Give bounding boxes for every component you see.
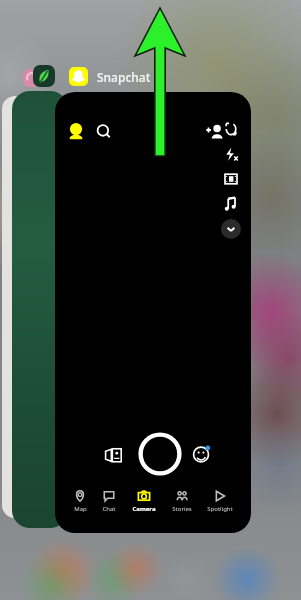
button[interactable]: Profile xyxy=(64,120,88,144)
staticText: Camera xyxy=(132,505,156,513)
button[interactable]: Sounds xyxy=(221,194,241,214)
staticText: Chat xyxy=(102,505,116,513)
staticText: Snapchat xyxy=(97,69,151,85)
button[interactable]: Camera xyxy=(130,488,158,514)
staticText: Stories xyxy=(172,505,192,513)
button[interactable]: Chat xyxy=(100,488,118,514)
staticText: Map xyxy=(74,505,87,513)
button[interactable]: Flip camera xyxy=(221,119,241,139)
button[interactable]: More options xyxy=(221,219,241,239)
button[interactable]: Search xyxy=(93,121,115,143)
button[interactable] xyxy=(12,91,68,528)
button[interactable]: Snapchat xyxy=(67,65,153,88)
button[interactable]: Stories xyxy=(170,488,194,514)
button[interactable]: Lenses xyxy=(190,442,214,466)
button[interactable]: Flash off xyxy=(221,144,241,164)
button[interactable] xyxy=(33,65,55,87)
button[interactable]: Spotlight xyxy=(205,488,235,514)
button[interactable]: Timeline xyxy=(221,169,241,189)
button[interactable] xyxy=(2,96,28,518)
staticText: Spotlight xyxy=(207,505,233,513)
button[interactable]: Profile xyxy=(55,92,251,533)
button[interactable]: Memories xyxy=(103,442,129,468)
button[interactable]: Add friends xyxy=(205,121,227,143)
button[interactable]: Capture xyxy=(138,432,182,476)
button[interactable]: Map xyxy=(71,488,89,514)
